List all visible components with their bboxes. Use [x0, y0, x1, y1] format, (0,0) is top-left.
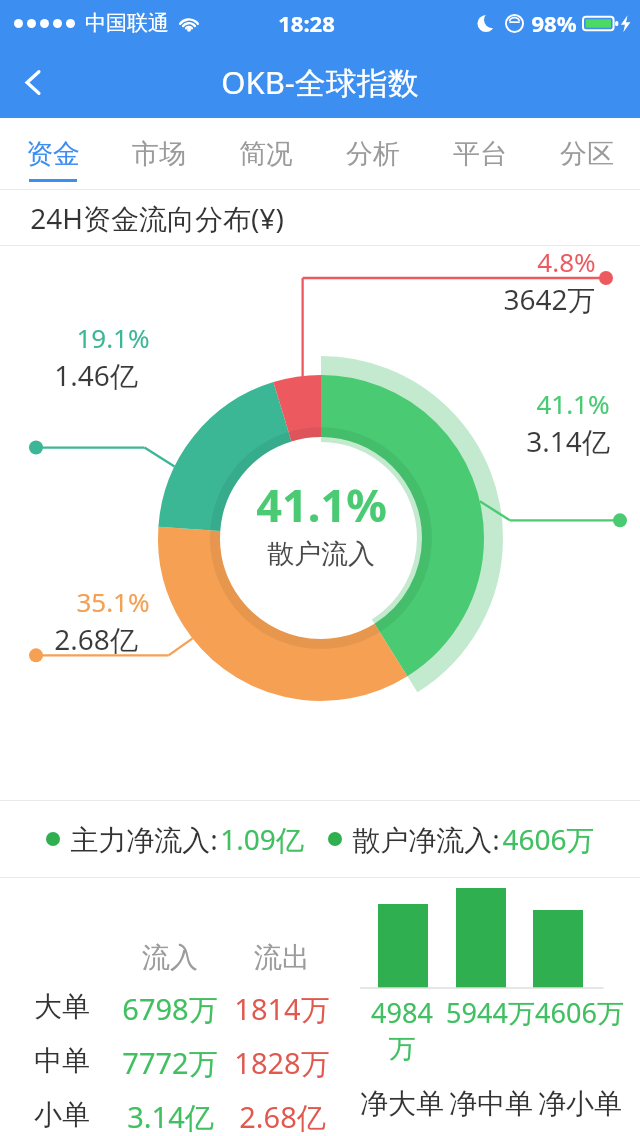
staticText: 净大单	[360, 1086, 444, 1121]
button[interactable]: 分析	[319, 118, 426, 190]
staticText: 2.68亿	[54, 620, 138, 658]
staticText: 19.1%	[76, 320, 150, 355]
button[interactable]: 分区	[533, 118, 640, 190]
staticText: 分区	[560, 137, 614, 171]
button[interactable]: 平台	[426, 118, 533, 190]
staticText: 2.68亿	[239, 1097, 326, 1136]
staticText: 中国联通	[85, 10, 169, 36]
staticText: 简况	[239, 137, 293, 171]
staticText: 小单	[34, 1097, 90, 1132]
button[interactable]: 简况	[212, 118, 319, 190]
staticText: 市场	[132, 137, 186, 171]
staticText: 1.46亿	[54, 356, 138, 394]
staticText: 4606万	[502, 820, 595, 858]
staticText: 41.1%	[256, 474, 387, 535]
staticText: 18:28	[278, 8, 335, 38]
staticText: 1828万	[234, 1043, 330, 1083]
staticText: 41.1%	[536, 386, 610, 421]
staticText: 分析	[346, 137, 400, 171]
staticText: OKB-全球指数	[221, 61, 419, 103]
staticText: 3.14亿	[127, 1097, 214, 1136]
staticText: 流出	[254, 940, 310, 975]
staticText: 平台	[453, 137, 507, 171]
staticText: 4.8%	[537, 244, 596, 279]
staticText: 35.1%	[76, 584, 150, 619]
staticText: 98%	[531, 8, 577, 38]
staticText: 中单	[34, 1043, 90, 1078]
staticText: 3.14亿	[526, 422, 610, 460]
staticText: 7772万	[122, 1043, 218, 1083]
button[interactable]: 市场	[106, 118, 212, 190]
staticText: 1.09亿	[220, 820, 304, 858]
staticText: 资金	[26, 137, 80, 171]
button[interactable]: Back	[0, 49, 66, 115]
staticText: 净小单	[538, 1086, 622, 1121]
staticText: 24H资金流向分布(¥)	[30, 199, 284, 237]
staticText: 散户净流入:	[352, 820, 500, 858]
staticText: 大单	[34, 989, 90, 1024]
staticText: 散户流入	[267, 537, 375, 571]
staticText: 6798万	[122, 989, 218, 1029]
staticText: 主力净流入:	[70, 820, 218, 858]
staticText: 净中单	[449, 1086, 533, 1121]
staticText: 4606万	[535, 994, 624, 1031]
staticText: 4984万	[358, 994, 446, 1066]
staticText: 3642万	[503, 280, 596, 318]
staticText: 流入	[142, 940, 198, 975]
button[interactable]: 资金	[0, 118, 106, 190]
staticText: 1814万	[234, 989, 330, 1029]
staticText: 5944万	[446, 994, 535, 1031]
